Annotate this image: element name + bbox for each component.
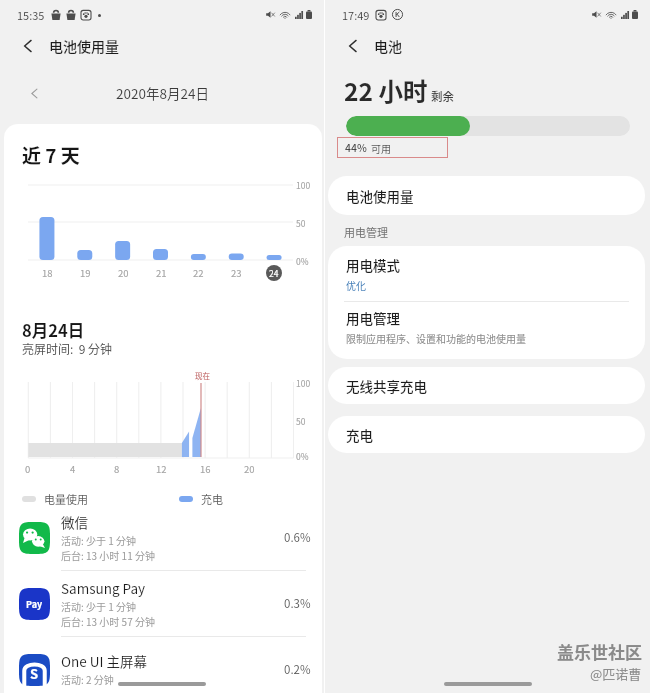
staticText: Pay	[26, 598, 43, 611]
staticText: 12	[156, 462, 167, 476]
staticText: 0%	[296, 450, 309, 462]
staticText: 16	[200, 462, 211, 476]
staticText: 电池使用量	[346, 186, 414, 206]
staticText: 后台: 13 小时 11 分钟	[61, 548, 155, 562]
staticText: 20	[244, 462, 255, 476]
staticText: 50	[296, 415, 306, 427]
staticText: 活动: 少于 1 分钟	[61, 599, 137, 613]
staticText: 剩余	[431, 88, 454, 105]
staticText: 24	[269, 267, 279, 279]
staticText: 0.3%	[284, 595, 311, 612]
staticText: 20	[118, 266, 129, 280]
staticText: 4	[70, 462, 76, 476]
button[interactable]: 电池使用量	[0, 29, 324, 62]
button[interactable]: 电池使用量	[328, 176, 645, 215]
staticText: 15:35	[17, 7, 45, 23]
button[interactable]: 无线共享充电	[328, 367, 645, 404]
staticText: 优化	[346, 278, 366, 292]
staticText: 0.2%	[284, 661, 311, 678]
button[interactable]: Previous day	[16, 62, 52, 124]
staticText: 18	[42, 266, 53, 280]
button[interactable]: Pay	[4, 571, 322, 636]
staticText: 现在	[195, 370, 210, 381]
staticText: 充电	[346, 425, 373, 445]
button[interactable]: 电池	[325, 29, 650, 62]
staticText: 100	[296, 179, 311, 191]
staticText: 50	[296, 217, 306, 229]
staticText: Samsung Pay	[61, 578, 146, 598]
staticText: 充电	[201, 491, 223, 507]
staticText: 后台: 13 小时 57 分钟	[61, 614, 155, 628]
button[interactable]: 用电模式	[328, 246, 645, 301]
staticText: One UI 主屏幕	[61, 651, 147, 671]
staticText: 盖乐世社区	[557, 639, 642, 664]
staticText: 0	[25, 462, 31, 476]
staticText: 44%	[345, 140, 367, 155]
staticText: 可用	[371, 141, 391, 155]
staticText: 限制应用程序、设置和功能的电池使用量	[346, 331, 526, 345]
staticText: 电量使用	[44, 491, 88, 507]
button[interactable]: 充电	[328, 416, 645, 453]
staticText: 用电模式	[346, 255, 400, 275]
staticText: 近 7 天	[22, 141, 80, 169]
button[interactable]: 用电管理	[328, 302, 645, 350]
staticText: 电池	[374, 36, 402, 56]
staticText: 0.6%	[284, 529, 311, 546]
staticText: 电池使用量	[49, 36, 119, 56]
staticText: 22 小时	[344, 73, 428, 108]
staticText: 活动: 少于 1 分钟	[61, 533, 137, 547]
staticText: 活动: 2 分钟	[61, 672, 114, 686]
staticText: 用电管理	[346, 308, 400, 328]
staticText: 23	[231, 266, 242, 280]
button[interactable]: 微信	[4, 505, 322, 570]
staticText: 8月24日	[22, 318, 85, 342]
staticText: 17:49	[342, 7, 370, 23]
staticText: 22	[193, 266, 204, 280]
staticText: 19	[80, 266, 91, 280]
staticText: S	[30, 664, 39, 683]
staticText: 无线共享充电	[346, 376, 427, 396]
staticText: 100	[296, 377, 311, 389]
staticText: 2020年8月24日	[116, 83, 209, 103]
staticText: 亮屏时间: 9 分钟	[22, 340, 113, 357]
button[interactable]: S	[4, 637, 322, 693]
staticText: @匹诺曹	[590, 664, 642, 683]
staticText: 21	[156, 266, 167, 280]
staticText: 8	[114, 462, 120, 476]
staticText: 用电管理	[344, 224, 388, 240]
staticText: 0%	[296, 255, 309, 267]
staticText: 微信	[61, 512, 88, 532]
